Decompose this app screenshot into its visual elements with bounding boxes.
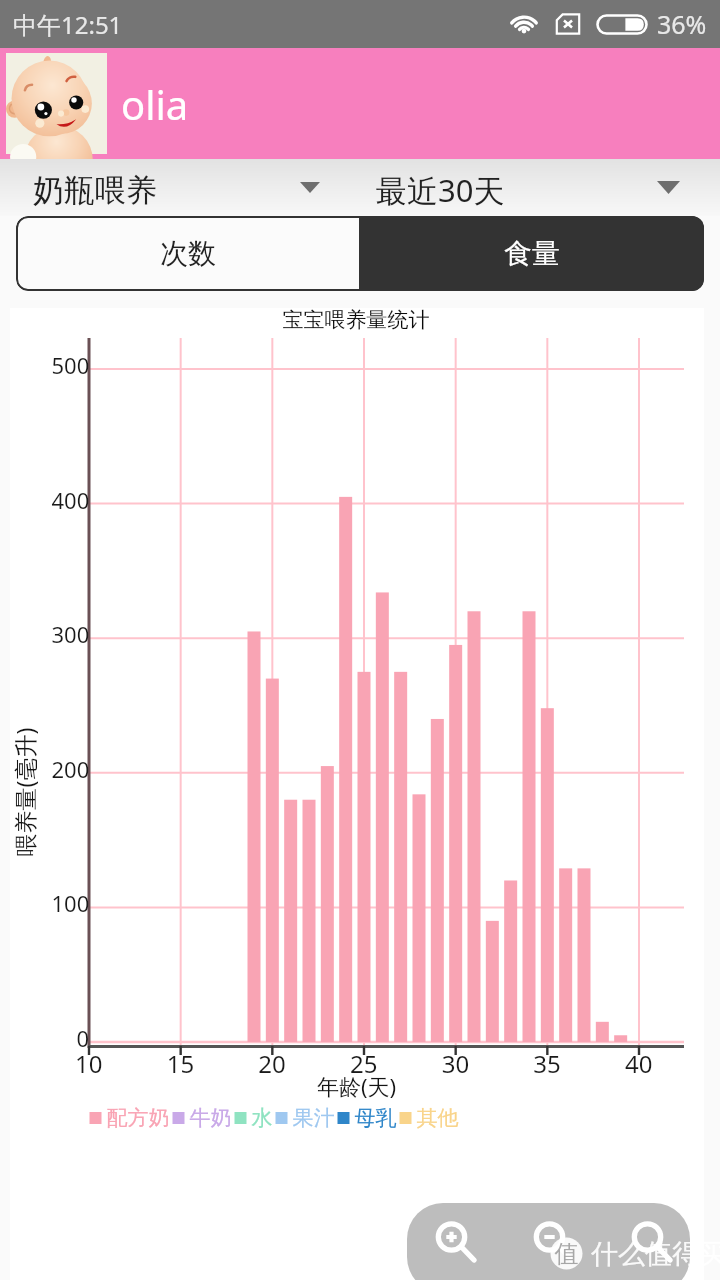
button[interactable]: 最近30天 — [360, 159, 720, 216]
staticText: olia — [121, 77, 189, 131]
staticText: 中午12:51 — [13, 8, 123, 41]
button[interactable]: Baby profile photo — [6, 53, 107, 154]
button[interactable]: 奶瓶喂养 — [0, 159, 360, 216]
staticText: 36% — [657, 7, 707, 41]
button[interactable]: 次数 — [16, 216, 359, 291]
staticText: 食量 — [504, 236, 560, 271]
button[interactable]: Zoom out — [515, 1203, 595, 1273]
button[interactable]: 食量 — [359, 216, 704, 291]
button[interactable]: Reset zoom — [613, 1203, 690, 1273]
staticText: 次数 — [160, 236, 216, 271]
button[interactable]: Zoom in — [417, 1203, 497, 1273]
staticText: 最近30天 — [376, 169, 505, 211]
staticText: 奶瓶喂养 — [33, 171, 157, 210]
